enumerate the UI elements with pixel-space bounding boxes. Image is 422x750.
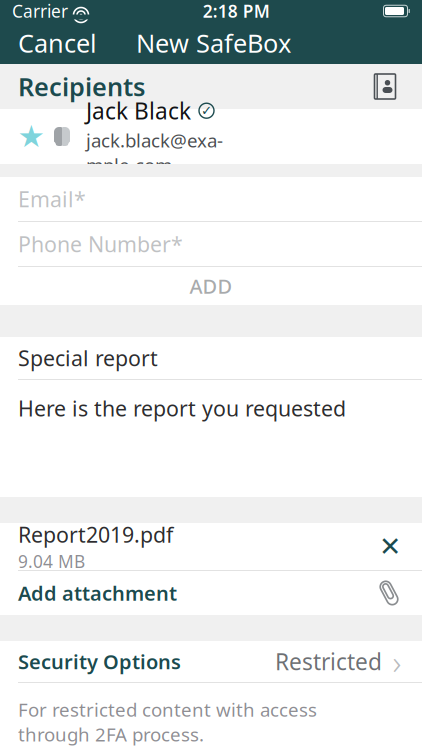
staticText: ADD: [189, 273, 232, 299]
button[interactable]: Cancel: [0, 22, 115, 64]
staticText: 2:18 PM: [203, 0, 270, 22]
button[interactable]: Remove attachment: [376, 532, 404, 560]
button[interactable]: Here is the report you requested: [0, 380, 422, 497]
staticText: ✕: [379, 531, 401, 562]
button[interactable]: Security Options: [0, 641, 422, 682]
staticText: Restricted: [275, 646, 382, 676]
staticText: ›: [392, 639, 401, 684]
button[interactable]: Phone Number*: [0, 222, 422, 267]
staticText: Report2019.pdf: [18, 520, 173, 549]
staticText: For restricted content with access throu…: [18, 697, 317, 747]
staticText: New SafeBox: [136, 26, 291, 60]
staticText: Jack Black: [86, 96, 191, 126]
button[interactable]: ★: [0, 109, 422, 164]
staticText: Recipients: [18, 70, 145, 103]
staticText: Email*: [18, 185, 86, 213]
staticText: Phone Number*: [18, 230, 183, 258]
staticText: Carrier: [12, 0, 68, 22]
button[interactable]: ADD: [0, 267, 422, 305]
staticText: Here is the report you requested: [18, 394, 346, 422]
staticText: ✓: [201, 103, 212, 118]
button[interactable]: Choose from contacts: [370, 71, 404, 101]
staticText: Add attachment: [18, 580, 177, 606]
staticText: 9.04 MB: [18, 550, 85, 573]
staticText: Cancel: [18, 26, 97, 60]
staticText: jack.black@example.com: [86, 128, 223, 177]
staticText: ★: [17, 119, 44, 154]
button[interactable]: Email*: [0, 177, 422, 222]
button[interactable]: Add attachment: [0, 571, 422, 615]
staticText: Security Options: [18, 648, 181, 675]
button[interactable]: Special report: [0, 337, 422, 380]
staticText: Special report: [18, 344, 158, 372]
